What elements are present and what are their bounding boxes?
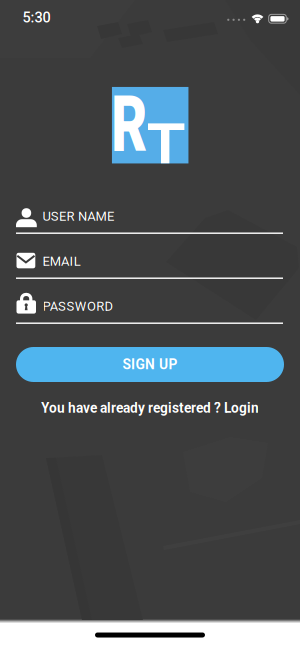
staticText: You have already registered ? Login <box>41 400 259 416</box>
button[interactable]: You have already registered ? Login <box>41 400 259 416</box>
button[interactable]: EMAIL <box>16 241 284 281</box>
staticText: USER NAME <box>42 209 114 224</box>
staticText: PASSWORD <box>42 299 114 314</box>
staticText: EMAIL <box>42 254 81 269</box>
staticText: R <box>104 80 154 170</box>
button[interactable]: USER NAME <box>16 196 284 236</box>
button[interactable]: PASSWORD <box>16 286 284 326</box>
staticText: 5:30 <box>22 9 50 26</box>
button[interactable]: SIGN UP <box>16 347 284 382</box>
staticText: SIGN UP <box>122 356 177 373</box>
